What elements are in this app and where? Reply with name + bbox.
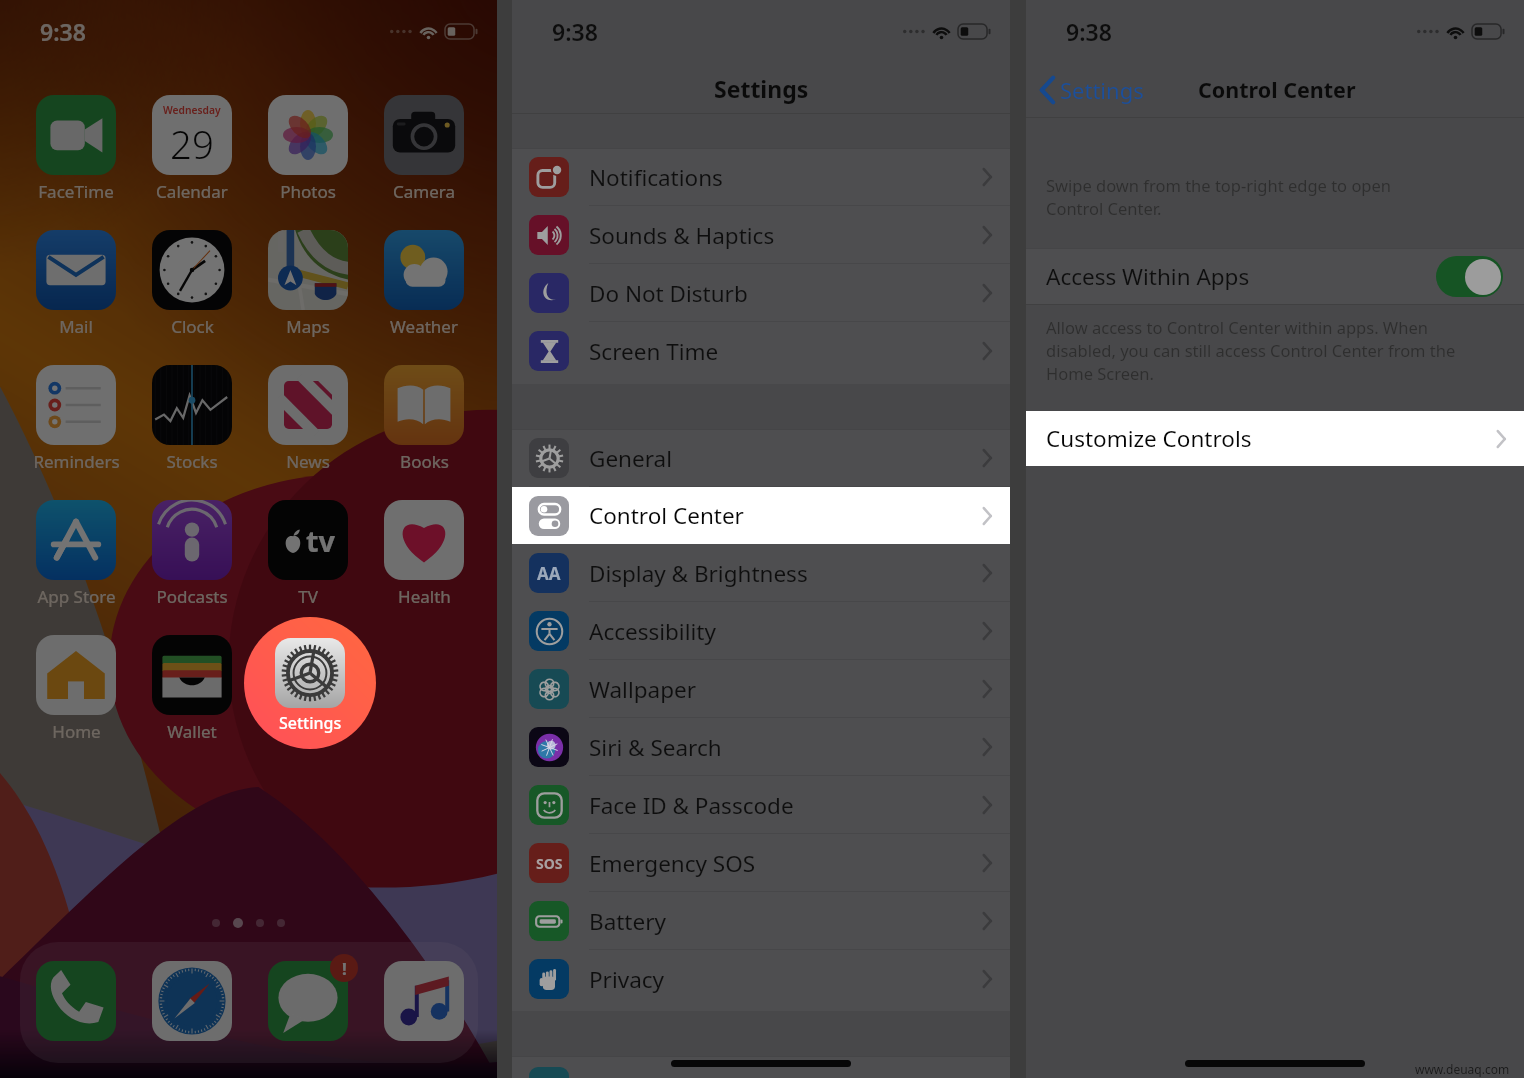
staticText: ! [342, 957, 347, 980]
staticText: Face ID & Passcode [589, 790, 794, 821]
button[interactable]: Reminders [24, 365, 128, 473]
staticText: Access Within Apps [1046, 261, 1250, 292]
staticText: Allow access to Control Center within ap… [1046, 316, 1428, 338]
staticText: Customize Controls [1046, 423, 1252, 454]
button[interactable]: App Store [24, 500, 128, 608]
button[interactable]: Wednesday [140, 95, 244, 203]
button[interactable]: Weather [372, 230, 476, 338]
button[interactable]: Mail [24, 230, 128, 338]
button[interactable]: Maps [256, 230, 360, 338]
staticText: Swipe down from the top-right edge to op… [1046, 174, 1392, 196]
staticText: Display & Brightness [589, 558, 808, 589]
button[interactable]: Access Within Apps [1026, 248, 1524, 304]
staticText: Clock [171, 315, 214, 338]
button[interactable]: Screen Time [512, 322, 1010, 380]
button[interactable]: Siri & Search [512, 718, 1010, 776]
staticText: Battery [589, 906, 666, 937]
staticText: Camera [393, 180, 455, 203]
button[interactable]: Face ID & Passcode [512, 776, 1010, 834]
staticText: Privacy [589, 964, 665, 995]
button[interactable]: tv [256, 500, 360, 608]
staticText: Emergency SOS [589, 848, 756, 879]
button[interactable]: Health [372, 500, 476, 608]
button[interactable]: Control Center [512, 487, 1010, 544]
staticText: Siri & Search [589, 732, 722, 763]
staticText: Accessibility [589, 616, 716, 647]
button[interactable]: Phone [36, 961, 116, 1041]
button[interactable]: Accessibility [512, 602, 1010, 660]
staticText: SOS [536, 854, 563, 873]
staticText: www.deuaq.com [1415, 1061, 1510, 1077]
staticText: 29 [170, 118, 214, 170]
staticText: Screen Time [589, 336, 719, 367]
button[interactable]: Customize Controls [1026, 411, 1524, 466]
staticText: AA [537, 562, 561, 585]
staticText: 9:38 [40, 16, 86, 47]
staticText: Wallet [167, 720, 217, 743]
staticText: Stocks [166, 450, 218, 473]
staticText: disabled, you can still access Control C… [1046, 339, 1456, 361]
staticText: Notifications [589, 162, 723, 193]
button[interactable]: Do Not Disturb [512, 264, 1010, 322]
staticText: Control Center [589, 500, 744, 531]
button[interactable]: Notifications [512, 148, 1010, 206]
button[interactable]: Safari [152, 961, 232, 1041]
staticText: TV [298, 585, 318, 608]
button[interactable]: Settings [244, 617, 376, 749]
button[interactable]: SOS [512, 834, 1010, 892]
button[interactable]: Sounds & Haptics [512, 206, 1010, 264]
staticText: Home Screen. [1046, 362, 1154, 384]
staticText: FaceTime [38, 180, 114, 203]
button[interactable]: Music [384, 961, 464, 1041]
button[interactable]: Books [372, 365, 476, 473]
staticText: 9:38 [552, 16, 598, 47]
button[interactable]: Wallpaper [512, 660, 1010, 718]
staticText: Weather [390, 315, 458, 338]
button[interactable]: Podcasts [140, 500, 244, 608]
button[interactable]: News [256, 365, 360, 473]
staticText: General [589, 443, 672, 474]
staticText: Books [400, 450, 449, 473]
button[interactable]: FaceTime [24, 95, 128, 203]
button[interactable]: Privacy [512, 950, 1010, 1008]
button[interactable]: Camera [372, 95, 476, 203]
staticText: Calendar [156, 180, 228, 203]
staticText: Wednesday [163, 103, 221, 117]
button[interactable]: General [512, 429, 1010, 487]
staticText: Podcasts [156, 585, 228, 608]
button[interactable]: Photos [256, 95, 360, 203]
staticText: Maps [286, 315, 330, 338]
staticText: Control Center. [1046, 197, 1162, 219]
staticText: Do Not Disturb [589, 278, 748, 309]
staticText: Settings [1060, 75, 1144, 105]
staticText: Sounds & Haptics [589, 220, 775, 251]
staticText: Mail [59, 315, 93, 338]
button[interactable]: Settings [1038, 71, 1146, 109]
button[interactable]: Wallet [140, 635, 244, 743]
staticText: Settings [279, 712, 342, 734]
button[interactable]: Access Within Apps toggle [1436, 256, 1503, 297]
button[interactable]: Home [24, 635, 128, 743]
button[interactable]: AA [512, 544, 1010, 602]
staticText: Home [52, 720, 101, 743]
button[interactable]: Battery [512, 892, 1010, 950]
staticText: News [286, 450, 330, 473]
staticText: Wallpaper [589, 674, 696, 705]
staticText: Settings [714, 73, 809, 104]
staticText: App Store [37, 585, 116, 608]
staticText: Control Center [1198, 75, 1356, 104]
button[interactable]: Messages [268, 961, 348, 1041]
staticText: tv [306, 521, 335, 560]
staticText: Reminders [33, 450, 120, 473]
staticText: Photos [280, 180, 336, 203]
button[interactable]: Clock [140, 230, 244, 338]
staticText: 9:38 [1066, 16, 1112, 47]
button[interactable]: Stocks [140, 365, 244, 473]
staticText: Health [398, 585, 451, 608]
